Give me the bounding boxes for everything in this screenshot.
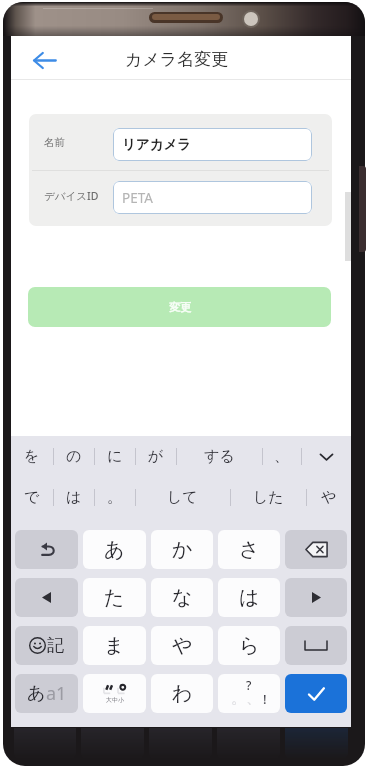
button[interactable]: さ: [218, 530, 280, 569]
button[interactable]: リアカメラ: [113, 128, 312, 161]
button[interactable]: に: [94, 436, 135, 477]
staticText: を: [24, 447, 40, 466]
button[interactable]: や: [151, 626, 213, 665]
button[interactable]: 変更: [28, 287, 331, 327]
button[interactable]: ま: [83, 626, 146, 665]
button[interactable]: する: [176, 436, 262, 477]
button[interactable]: ら: [218, 626, 280, 665]
button[interactable]: は: [218, 578, 280, 617]
button[interactable]: Undo: [15, 530, 78, 569]
button[interactable]: Move right: [285, 578, 347, 617]
button[interactable]: PETA: [113, 181, 312, 214]
button[interactable]: Switch input mode: [15, 674, 78, 713]
staticText: リアカメラ: [122, 136, 192, 153]
staticText: 。: [231, 689, 246, 708]
staticText: か: [172, 537, 193, 562]
staticText: が: [148, 447, 164, 466]
staticText: た: [104, 585, 125, 610]
button[interactable]: な: [151, 578, 213, 617]
button[interactable]: わ: [151, 674, 213, 713]
staticText: 、: [274, 447, 289, 466]
button[interactable]: は: [53, 477, 94, 518]
staticText: 名前: [44, 136, 65, 149]
staticText: 変更: [169, 300, 191, 314]
button[interactable]: の: [53, 436, 94, 477]
button[interactable]: か: [151, 530, 213, 569]
button[interactable]: Enter: [285, 674, 347, 713]
button[interactable]: Dakuten and small kana: [83, 674, 146, 713]
staticText: の: [66, 447, 82, 466]
button[interactable]: Back: [31, 47, 57, 73]
staticText: さ: [239, 537, 260, 562]
staticText: や: [172, 633, 193, 658]
button[interactable]: Expand suggestions: [301, 436, 351, 477]
staticText: 、: [246, 689, 261, 708]
staticText: 記: [47, 635, 64, 656]
staticText: は: [66, 488, 82, 507]
staticText: ま: [104, 633, 125, 658]
staticText: あ: [27, 682, 46, 705]
button[interactable]: で: [11, 477, 53, 518]
button[interactable]: や: [306, 477, 351, 518]
staticText: な: [172, 585, 193, 610]
button[interactable]: 、: [262, 436, 301, 477]
button[interactable]: あ: [83, 530, 146, 569]
staticText: 。: [107, 488, 122, 507]
button[interactable]: Backspace: [285, 530, 347, 569]
staticText: カメラ名変更: [125, 49, 229, 70]
staticText: する: [204, 447, 235, 466]
button[interactable]: Move left: [15, 578, 78, 617]
staticText: デバイスID: [44, 189, 99, 203]
staticText: で: [24, 488, 40, 507]
staticText: して: [167, 488, 198, 507]
staticText: に: [107, 447, 123, 466]
staticText: ?: [246, 677, 252, 693]
staticText: は: [239, 585, 260, 610]
button[interactable]: 。: [94, 477, 135, 518]
staticText: PETA: [122, 189, 153, 207]
staticText: !: [263, 690, 267, 708]
button[interactable]: Emoji and symbols: [15, 626, 78, 665]
button[interactable]: が: [135, 436, 176, 477]
button[interactable]: Punctuation: [218, 674, 280, 713]
button[interactable]: を: [11, 436, 53, 477]
staticText: 大中小: [106, 696, 124, 704]
button[interactable]: Space: [285, 626, 347, 665]
button[interactable]: して: [135, 477, 230, 518]
staticText: した: [253, 488, 284, 507]
button[interactable]: た: [83, 578, 146, 617]
staticText: や: [321, 488, 337, 507]
staticText: ら: [239, 633, 260, 658]
button[interactable]: した: [230, 477, 306, 518]
staticText: あ: [104, 537, 125, 562]
staticText: a1: [46, 681, 67, 706]
staticText: わ: [172, 681, 193, 706]
